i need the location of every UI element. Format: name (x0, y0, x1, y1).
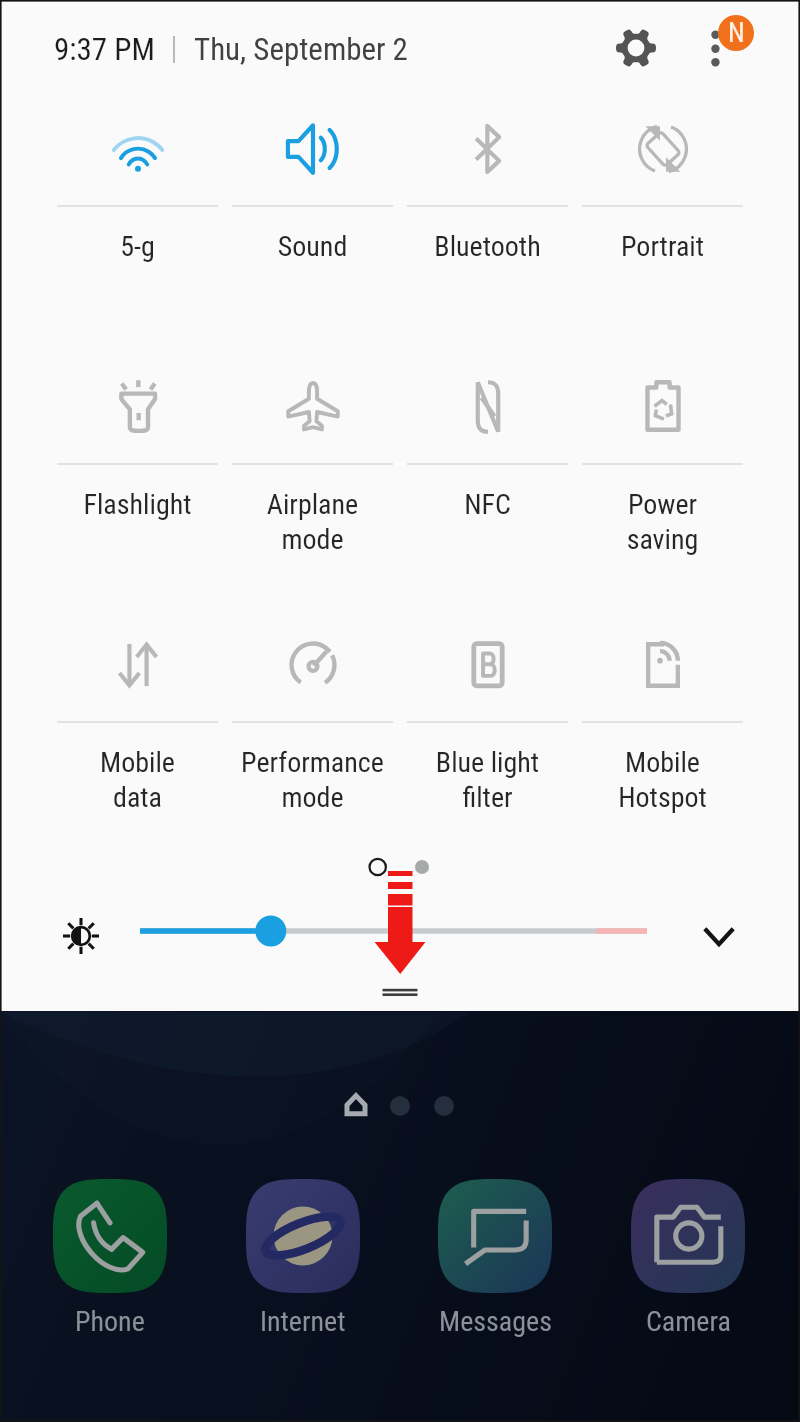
button[interactable]: Flashlight (50, 358, 225, 616)
staticText: Messages (439, 1305, 552, 1338)
button[interactable]: Expand (691, 908, 747, 964)
staticText: Airplane mode (225, 488, 400, 556)
staticText: Thu, September 2 (194, 31, 408, 67)
staticText: Mobile Hotspot (575, 746, 750, 814)
button[interactable]: Airplane mode (225, 358, 400, 616)
button[interactable]: Mobile data (50, 616, 225, 874)
button[interactable]: Messages (410, 1179, 580, 1338)
staticText: Internet (260, 1305, 346, 1338)
staticText: Phone (75, 1305, 145, 1338)
button[interactable]: NFC (400, 358, 575, 616)
staticText: NFC (400, 488, 575, 521)
staticText: Flashlight (50, 488, 225, 521)
staticText: Camera (646, 1305, 731, 1338)
button[interactable]: Sound (225, 100, 400, 358)
staticText: Mobile data (50, 746, 225, 814)
staticText: 5-g (50, 230, 225, 263)
staticText: Portrait (575, 230, 750, 263)
staticText: N (728, 17, 745, 49)
staticText: Sound (225, 230, 400, 263)
button[interactable]: Bluetooth (400, 100, 575, 358)
staticText: Performance mode (225, 746, 400, 814)
button[interactable]: Portrait (575, 100, 750, 358)
button[interactable]: Power saving (575, 358, 750, 616)
button[interactable]: Internet (218, 1179, 388, 1338)
button[interactable]: Camera (603, 1179, 773, 1338)
staticText: Power saving (575, 488, 750, 556)
button[interactable]: Performance mode (225, 616, 400, 874)
staticText: Bluetooth (400, 230, 575, 263)
button[interactable]: 5-g (50, 100, 225, 358)
button[interactable]: Blue light filter (400, 616, 575, 874)
button[interactable]: Brightness (53, 908, 109, 964)
button[interactable]: Mobile Hotspot (575, 616, 750, 874)
button[interactable]: More options (688, 18, 744, 74)
button[interactable]: Settings (604, 16, 668, 80)
staticText: 9:37 PM (54, 31, 155, 67)
staticText: Blue light filter (400, 746, 575, 814)
button[interactable]: Phone (25, 1179, 195, 1338)
